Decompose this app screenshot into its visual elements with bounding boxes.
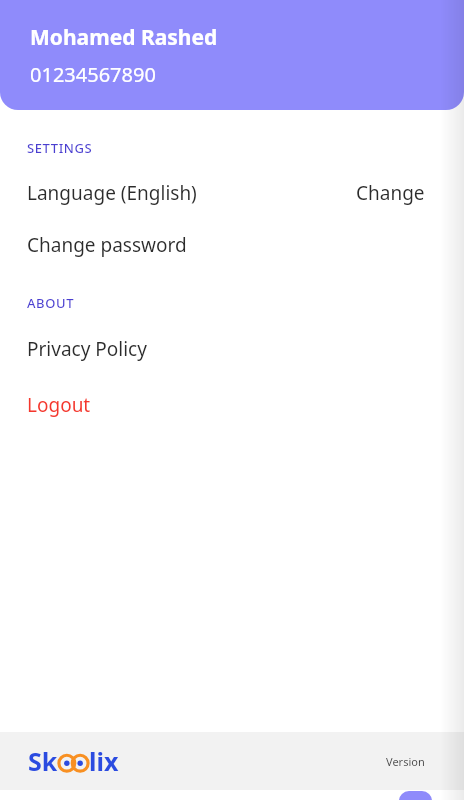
button[interactable]: Change password xyxy=(0,226,464,264)
staticText: Privacy Policy xyxy=(27,336,147,362)
staticText: Version xyxy=(386,754,425,769)
staticText: Mohamed Rashed xyxy=(30,23,218,52)
staticText: Logout xyxy=(27,392,91,418)
button[interactable]: Logout xyxy=(0,386,464,424)
staticText: Language (English) xyxy=(27,180,197,206)
button[interactable]: Add xyxy=(399,791,432,800)
staticText: lix xyxy=(89,744,119,778)
staticText: Change password xyxy=(27,232,187,258)
staticText: ABOUT xyxy=(27,294,75,312)
staticText: SETTINGS xyxy=(27,139,93,157)
button[interactable]: Language (English) xyxy=(0,174,464,212)
other: Skoolix xyxy=(28,744,119,778)
staticText: Sk xyxy=(28,744,58,778)
staticText: Change xyxy=(356,180,425,206)
staticText: 01234567890 xyxy=(30,61,156,88)
button[interactable]: Privacy Policy xyxy=(0,330,464,368)
